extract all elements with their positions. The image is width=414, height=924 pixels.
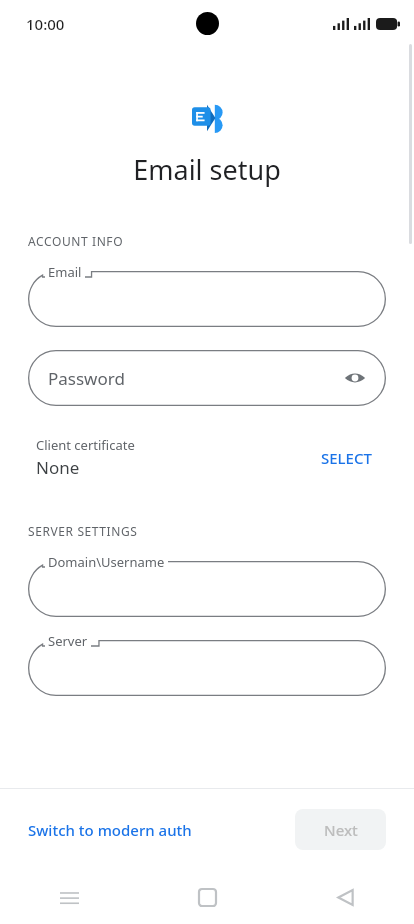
button[interactable]: Recent apps <box>0 870 138 924</box>
button[interactable]: Domain\Username <box>28 561 386 617</box>
button[interactable]: Next <box>295 809 386 850</box>
button[interactable]: Show password <box>338 361 372 395</box>
staticText: Switch to modern auth <box>28 820 192 840</box>
staticText: 10:00 <box>26 14 65 34</box>
staticText: Password <box>48 367 125 390</box>
staticText: Domain\Username <box>48 553 165 571</box>
staticText: Client certificate <box>36 436 135 454</box>
staticText: None <box>36 456 80 479</box>
staticText: SELECT <box>321 448 372 468</box>
button[interactable]: Back <box>276 870 414 924</box>
button[interactable]: SELECT <box>315 442 378 474</box>
button[interactable]: Switch to modern auth <box>0 810 202 850</box>
staticText: Email <box>48 263 82 281</box>
button[interactable]: Home <box>138 870 276 924</box>
staticText: Email setup <box>133 151 281 188</box>
staticText: ACCOUNT INFO <box>28 233 124 249</box>
button[interactable]: Server <box>28 640 386 696</box>
staticText: Server <box>48 632 88 650</box>
staticText: SERVER SETTINGS <box>28 523 138 539</box>
button[interactable]: Client certificate <box>0 432 414 483</box>
button[interactable]: Email <box>28 271 386 327</box>
staticText: Next <box>324 820 358 840</box>
button[interactable]: Password <box>28 350 386 406</box>
